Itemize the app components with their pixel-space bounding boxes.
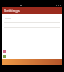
- button[interactable]: Settings: [2, 7, 62, 14]
- button[interactable]: [2, 59, 62, 65]
- staticText: Settings: [4, 8, 20, 13]
